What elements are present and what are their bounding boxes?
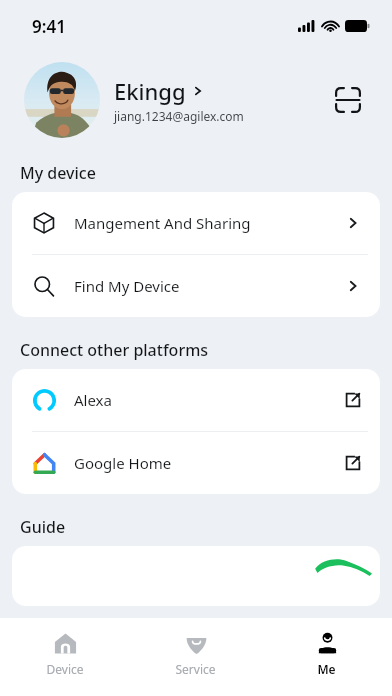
button[interactable] (24, 62, 100, 138)
staticText: Find My Device (74, 276, 344, 296)
staticText: Device (46, 661, 84, 677)
button[interactable]: Device (0, 618, 130, 696)
staticText: 9:41 (32, 15, 66, 38)
button[interactable]: Service (130, 618, 261, 696)
button[interactable]: Ekingg (114, 76, 328, 124)
staticText: Ekingg (114, 76, 186, 106)
button[interactable]: Scan code (328, 80, 368, 120)
button[interactable]: Alexa (12, 369, 380, 431)
staticText: Connect other platforms (20, 339, 209, 361)
staticText: My device (20, 162, 96, 184)
button[interactable]: Google Home (12, 432, 380, 494)
staticText: Me (317, 661, 336, 677)
button[interactable]: Find My Device (12, 255, 380, 317)
staticText: Google Home (74, 453, 344, 473)
staticText: Service (175, 661, 216, 677)
staticText: Guide (20, 516, 66, 538)
staticText: Alexa (74, 390, 344, 410)
button[interactable] (12, 546, 380, 606)
button[interactable]: Me (261, 618, 392, 696)
button[interactable]: Mangement And Sharing (12, 192, 380, 254)
staticText: Mangement And Sharing (74, 213, 344, 233)
staticText: jiang.1234@agilex.com (114, 108, 244, 124)
